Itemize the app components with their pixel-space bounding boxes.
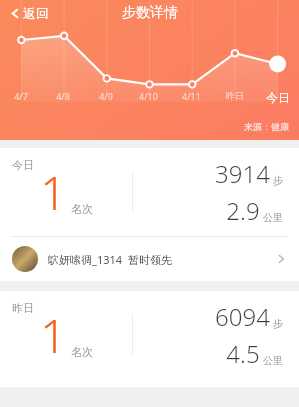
staticText: 名次 [71, 345, 93, 359]
staticText: 2.9 [226, 194, 260, 227]
staticText: 昨日 [12, 301, 34, 315]
staticText: 步 [273, 317, 283, 330]
staticText: 4/11 [182, 90, 201, 102]
staticText: 步数详情 [122, 4, 178, 22]
staticText: 公里 [263, 354, 283, 367]
staticText: 来源：健康 [244, 121, 289, 132]
staticText: 昨日 [226, 90, 244, 101]
other: Details [275, 253, 287, 265]
staticText: 1 [40, 161, 67, 224]
staticText: 公里 [263, 211, 283, 224]
staticText: 返回 [23, 5, 49, 21]
staticText: 1 [40, 304, 67, 367]
button[interactable]: 鴥妍嗦徟_1314 暂时领先 [0, 237, 299, 281]
staticText: 鴥妍嗦徟_1314 暂时领先 [48, 252, 172, 267]
staticText: 4/7 [14, 90, 28, 102]
staticText: 4/8 [56, 90, 70, 102]
staticText: 今日 [266, 90, 290, 105]
staticText: 4/9 [99, 90, 113, 102]
staticText: 6094 [215, 300, 270, 333]
staticText: 4.5 [226, 337, 260, 370]
button[interactable]: 返回 [6, 3, 53, 23]
staticText: 4/10 [139, 90, 158, 102]
staticText: 今日 [12, 158, 34, 172]
staticText: 步 [273, 174, 283, 187]
staticText: 名次 [71, 202, 93, 216]
staticText: 3914 [215, 157, 270, 190]
